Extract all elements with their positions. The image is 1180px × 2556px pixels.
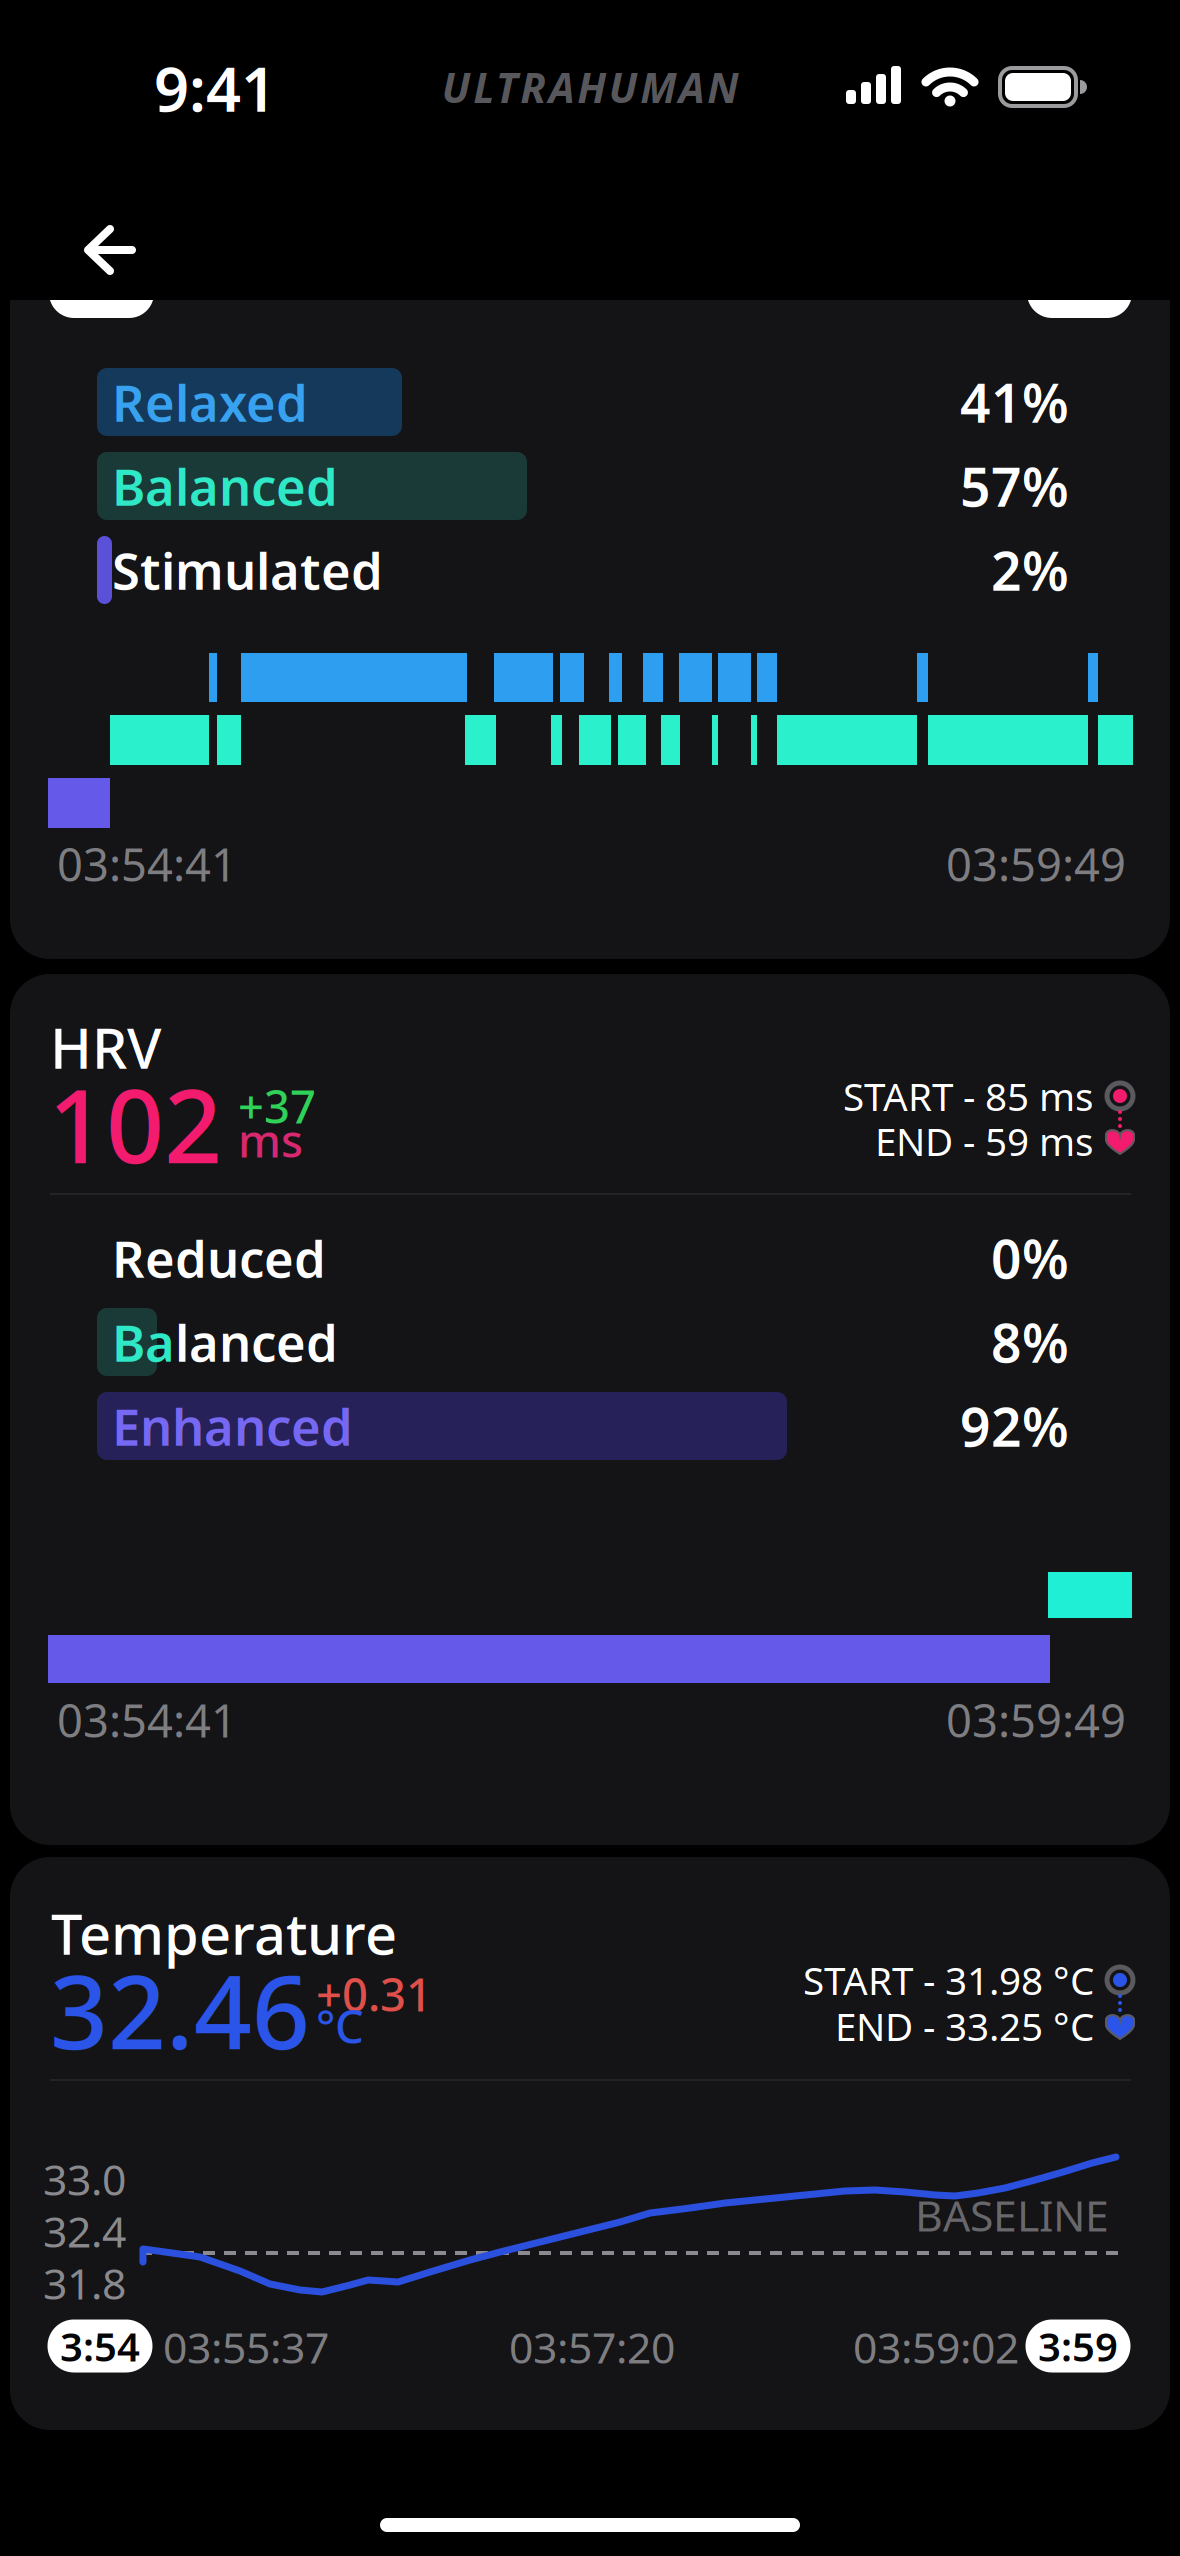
- staticText: 03:59:49: [946, 834, 1126, 894]
- staticText: 03:54:41: [57, 1690, 237, 1750]
- staticText: 03:57:20: [509, 2319, 675, 2375]
- staticText: 32.46: [50, 1943, 310, 2077]
- staticText: 8%: [991, 1307, 1069, 1377]
- staticText: ULTRAHUMAN: [442, 60, 738, 114]
- staticText: 2%: [991, 535, 1069, 605]
- staticText: Balanced: [112, 452, 338, 520]
- staticText: HRV: [50, 1010, 161, 1084]
- staticText: Relaxed: [112, 368, 308, 436]
- button[interactable]: 3:54: [47, 2319, 152, 2372]
- staticText: Temperature: [51, 1896, 397, 1970]
- staticText: 32.4: [43, 2203, 126, 2259]
- staticText: Ba: [112, 1308, 175, 1376]
- staticText: 41%: [960, 367, 1069, 437]
- staticText: 03:54:41: [57, 834, 237, 894]
- staticText: +37: [238, 1076, 316, 1136]
- staticText: Reduced: [112, 1224, 326, 1292]
- staticText: 31.8: [43, 2255, 126, 2311]
- staticText: Stimulated: [112, 536, 383, 604]
- staticText: 33.0: [43, 2151, 126, 2207]
- staticText: 0%: [991, 1223, 1069, 1293]
- staticText: 3:59: [1038, 2319, 1118, 2372]
- staticText: ms: [238, 1110, 303, 1170]
- staticText: Enhanced: [112, 1392, 353, 1460]
- staticText: 03:55:37: [163, 2319, 329, 2375]
- staticText: 102: [48, 1057, 222, 1191]
- staticText: +0.31: [316, 1964, 432, 2024]
- staticText: °C: [316, 1996, 364, 2056]
- staticText: START - 31.98 °C: [803, 1954, 1094, 2006]
- staticText: END - 59 ms: [875, 1115, 1094, 1167]
- staticText: BASELINE: [915, 2187, 1109, 2243]
- button[interactable]: Back: [50, 220, 170, 280]
- staticText: START - 85 ms: [843, 1070, 1094, 1122]
- button[interactable]: 3:59: [1025, 2319, 1130, 2372]
- staticText: 92%: [960, 1391, 1069, 1461]
- staticText: 3:54: [60, 2319, 140, 2372]
- staticText: END - 33.25 °C: [835, 2000, 1094, 2052]
- staticText: 03:59:49: [946, 1690, 1126, 1750]
- staticText: lanced: [175, 1308, 338, 1376]
- staticText: 03:59:02: [853, 2319, 1019, 2375]
- staticText: 57%: [960, 451, 1069, 521]
- staticText: 9:41: [154, 47, 276, 129]
